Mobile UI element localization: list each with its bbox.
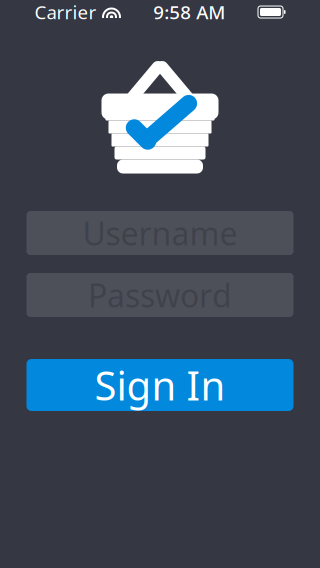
- staticText: Password: [88, 274, 232, 316]
- staticText: Carrier: [34, 0, 96, 24]
- button[interactable]: Sign In: [26, 359, 293, 411]
- button[interactable]: Username: [26, 211, 293, 255]
- staticText: 9:58 AM: [153, 0, 225, 24]
- staticText: Username: [82, 212, 237, 254]
- staticText: Sign In: [94, 358, 225, 411]
- button[interactable]: Password: [26, 273, 293, 317]
